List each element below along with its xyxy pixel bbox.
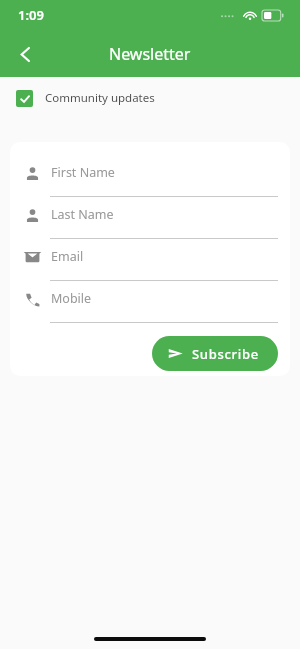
button[interactable]: Subscribe xyxy=(152,336,278,371)
staticText: Mobile xyxy=(51,290,92,307)
button[interactable]: Community updates xyxy=(0,77,300,119)
staticText: 1:09 xyxy=(18,6,44,24)
button[interactable]: Last Name xyxy=(10,197,290,239)
staticText: Last Name xyxy=(51,206,114,223)
button[interactable]: Email xyxy=(10,239,290,281)
staticText: Community updates xyxy=(45,90,155,106)
staticText: Newsletter xyxy=(109,43,191,65)
button[interactable]: Mobile xyxy=(10,281,290,323)
staticText: Email xyxy=(51,248,84,265)
staticText: First Name xyxy=(51,164,115,181)
button[interactable]: First Name xyxy=(10,155,290,197)
button[interactable]: Back xyxy=(4,33,46,75)
staticText: Subscribe xyxy=(192,345,259,363)
